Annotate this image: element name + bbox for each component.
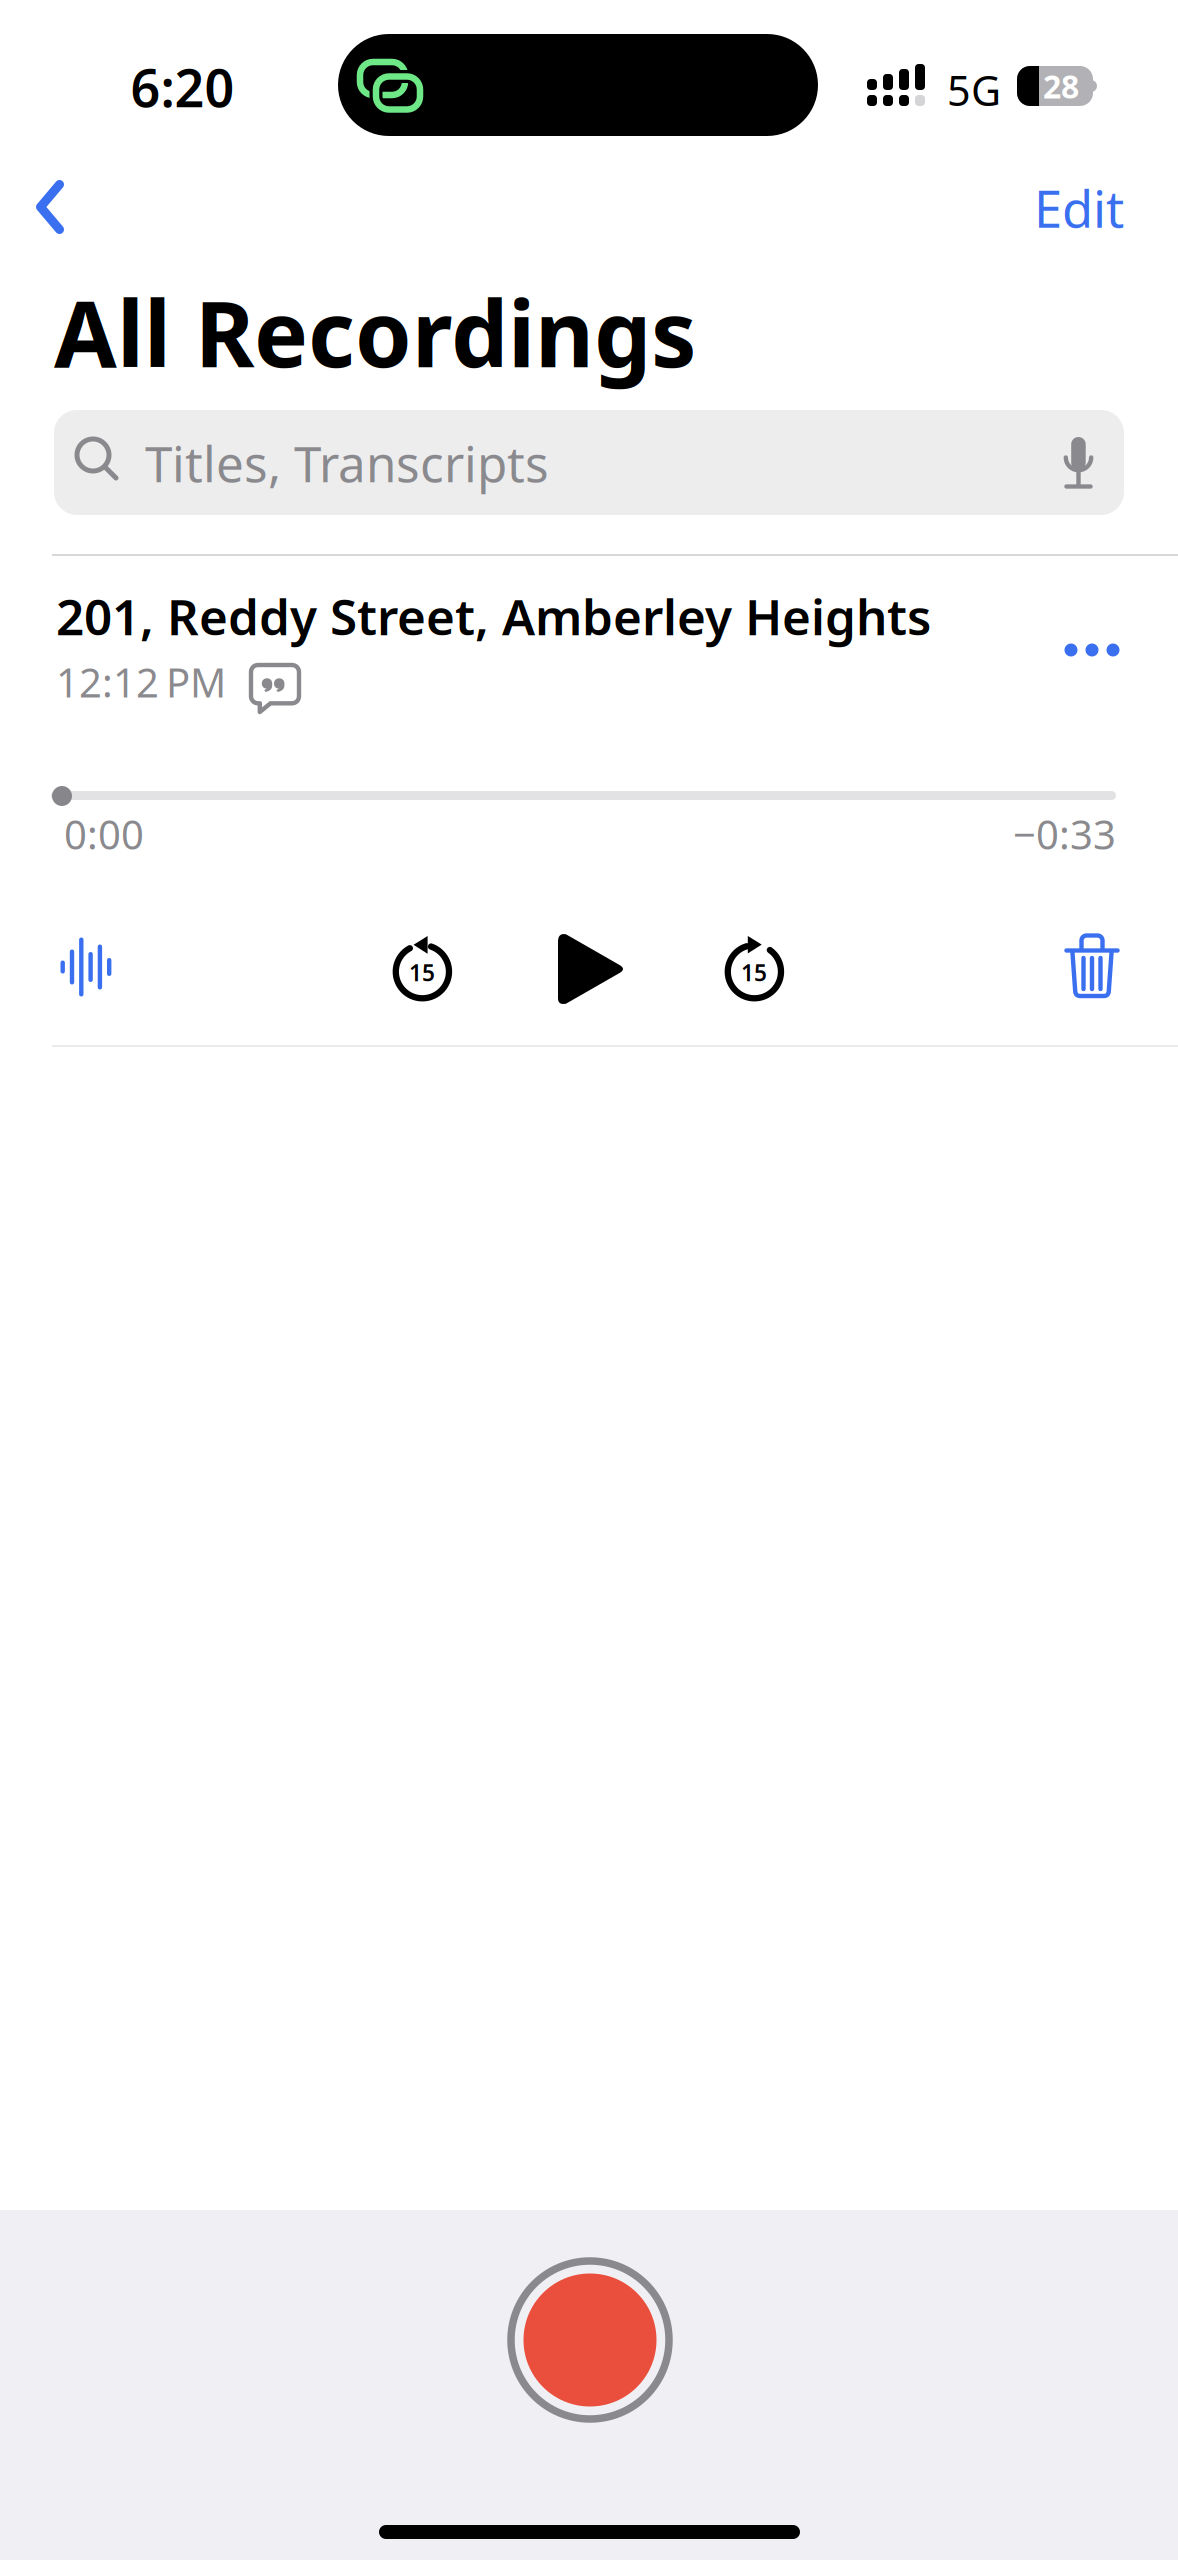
staticText: 12:12 PM	[56, 655, 226, 708]
staticText: Titles, Transcripts	[145, 430, 549, 496]
staticText: 28	[1043, 65, 1079, 107]
button[interactable]: More options	[0, 0, 1178, 2560]
staticText: Edit	[1034, 174, 1124, 242]
button[interactable]: Skip forward 15 seconds	[0, 0, 1178, 2560]
button[interactable]: Waveform	[0, 0, 1178, 2560]
button[interactable]: Titles, Transcripts	[0, 0, 1178, 2560]
button[interactable]: Skip back 15 seconds	[0, 0, 1178, 2560]
staticText: 201, Reddy Street, Amberley Heights	[56, 583, 931, 649]
staticText: 6:20	[130, 52, 234, 122]
button[interactable]: Delete	[0, 0, 1178, 2560]
staticText: 0:00	[64, 807, 144, 860]
staticText: −0:33	[1013, 807, 1116, 860]
staticText: 5G	[947, 63, 1001, 117]
button[interactable]: 201, Reddy Street, Amberley Heights	[0, 0, 1178, 2560]
button[interactable]: Record	[0, 0, 1178, 2560]
staticText: All Recordings	[54, 272, 697, 392]
staticText: 15	[409, 957, 435, 987]
button[interactable]: Back	[0, 0, 1178, 2560]
button[interactable]: Edit	[0, 0, 1178, 2560]
staticText: 15	[741, 957, 767, 987]
button[interactable]: Play	[0, 0, 1178, 2560]
